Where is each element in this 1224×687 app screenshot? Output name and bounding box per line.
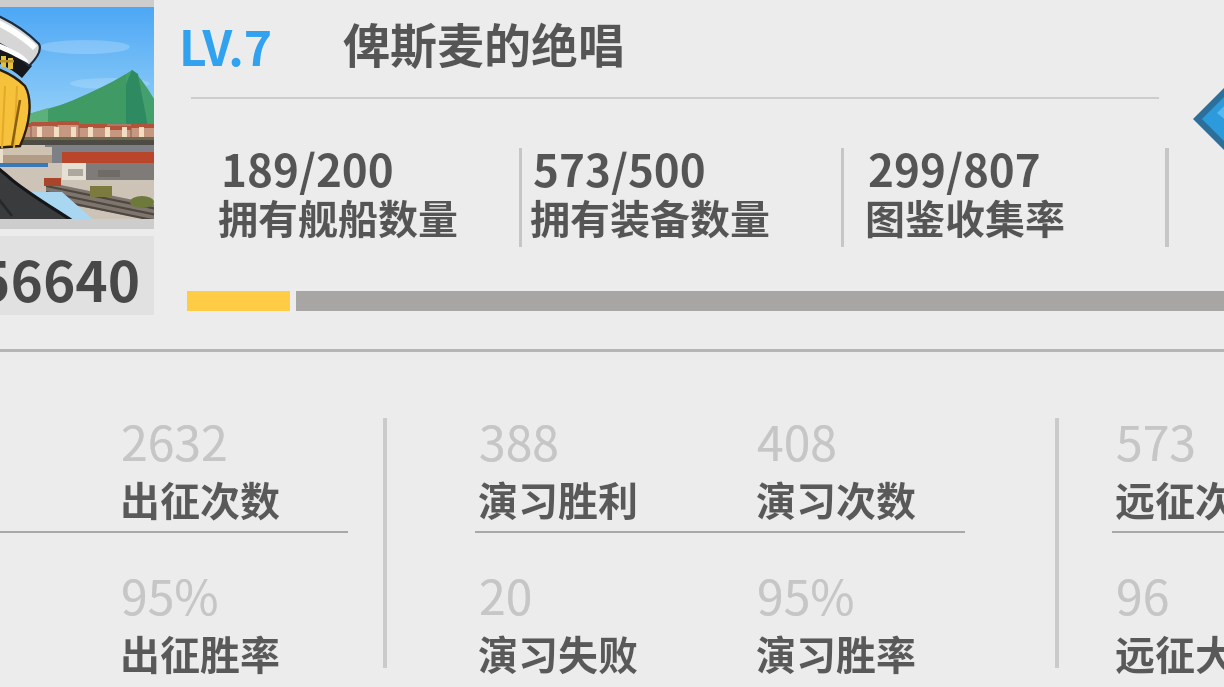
staticText: 408 [757, 405, 837, 475]
staticText: 573/500 [533, 136, 706, 200]
button[interactable]: 96 [1116, 568, 1224, 686]
staticText: 388 [479, 405, 559, 475]
button[interactable]: 95% [121, 568, 381, 686]
staticText: 远征大 [1115, 624, 1224, 682]
button[interactable]: Rank badge [1193, 14, 1224, 224]
button[interactable]: 俾斯麦的绝唱 [343, 8, 629, 76]
button[interactable]: 388 [479, 414, 739, 532]
button[interactable]: 189/200 [221, 136, 521, 248]
staticText: 出征次数 [120, 470, 280, 528]
staticText: 演习次数 [756, 470, 916, 528]
button[interactable]: 299/807 [868, 136, 1168, 248]
button[interactable]: 95% [757, 568, 1017, 686]
staticText: 56640 [0, 238, 141, 317]
staticText: 96 [1116, 559, 1170, 629]
staticText: 95% [757, 559, 855, 629]
staticText: 573 [1116, 405, 1196, 475]
staticText: 图鉴收集率 [865, 188, 1065, 246]
button[interactable]: 2632 [121, 414, 381, 532]
button[interactable]: 573/500 [533, 136, 833, 248]
staticText: 演习失败 [478, 624, 638, 682]
staticText: 拥有装备数量 [530, 188, 770, 246]
button[interactable]: Experience points [0, 236, 154, 315]
button[interactable]: 573 [1116, 414, 1224, 532]
staticText: 出征胜率 [120, 624, 280, 682]
staticText: 299/807 [868, 136, 1041, 200]
staticText: 2632 [121, 405, 228, 475]
staticText: LV.77 [179, 10, 299, 72]
staticText: 演习胜利 [478, 470, 638, 528]
staticText: 演习胜率 [756, 624, 916, 682]
button[interactable]: 408 [757, 414, 1017, 532]
staticText: 远征次数 [1115, 470, 1224, 528]
button[interactable]: LV.77 [179, 10, 299, 72]
staticText: 20 [479, 559, 533, 629]
staticText: 95% [121, 559, 219, 629]
button[interactable]: 20 [479, 568, 739, 686]
button[interactable]: Player avatar [0, 7, 154, 219]
staticText: 俾斯麦的绝唱 [343, 8, 625, 76]
staticText: 189/200 [221, 136, 394, 200]
staticText: 拥有舰船数量 [218, 188, 458, 246]
button[interactable]: Level progress [187, 291, 1224, 311]
